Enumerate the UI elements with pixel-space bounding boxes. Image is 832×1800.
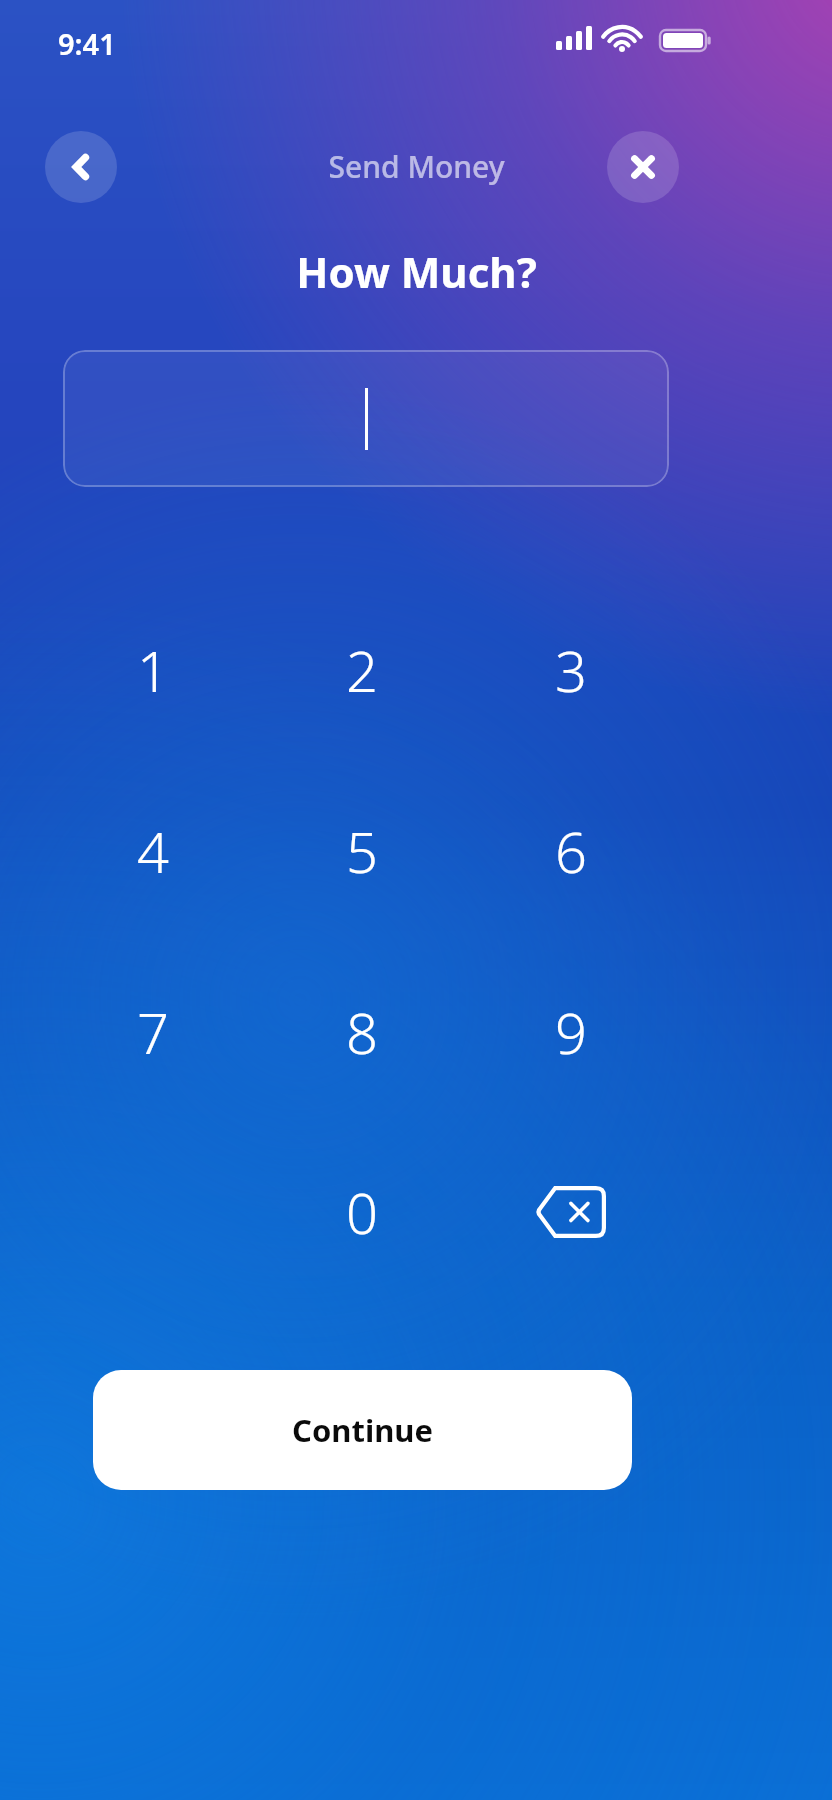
button[interactable]: Backspace [496,1137,646,1287]
staticText: How Much? [296,243,537,300]
button[interactable]: 1 [78,595,228,745]
staticText: 9 [555,994,587,1070]
staticText: 0 [346,1174,378,1250]
staticText: 7 [137,994,169,1070]
button[interactable]: 9 [496,957,646,1107]
button[interactable]: Continue [93,1370,632,1490]
staticText: 8 [346,994,378,1070]
button[interactable]: 8 [287,957,437,1107]
staticText: 6 [555,813,587,889]
button[interactable]: Close [607,131,679,203]
button[interactable]: 3 [496,595,646,745]
staticText: 9:41 [58,24,116,63]
staticText: Continue [292,1409,433,1451]
staticText: 2 [346,632,378,708]
button[interactable]: 2 [287,595,437,745]
button[interactable]: 6 [496,776,646,926]
button[interactable]: 5 [287,776,437,926]
button[interactable] [63,350,669,487]
staticText: 5 [346,813,378,889]
button[interactable]: Back [45,131,117,203]
staticText: 1 [137,632,169,708]
button[interactable]: 0 [287,1137,437,1287]
staticText: 3 [555,632,587,708]
button[interactable]: 7 [78,957,228,1107]
staticText: Send Money [328,146,505,187]
staticText: 4 [137,813,169,889]
button[interactable]: 4 [78,776,228,926]
